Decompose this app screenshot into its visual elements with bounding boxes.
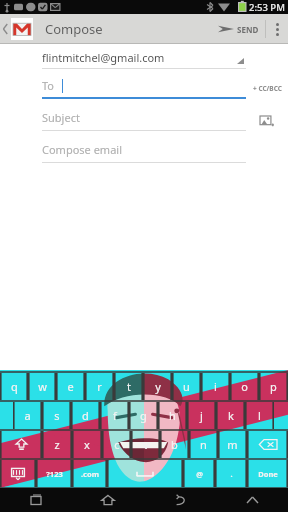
staticText: i (214, 379, 217, 394)
button[interactable]: + CC/BCC (246, 84, 288, 93)
staticText: ?123 (46, 469, 63, 479)
staticText: Compose (45, 20, 103, 38)
button[interactable]: b (160, 430, 189, 459)
staticText: flintmitchel@gmail.com (42, 50, 237, 65)
button[interactable]: l (245, 401, 274, 430)
button[interactable]: h (158, 401, 187, 430)
staticText: l (258, 408, 261, 423)
staticText: y (155, 379, 161, 394)
button[interactable]: Home (72, 488, 144, 512)
button[interactable]: ?123 (36, 459, 72, 488)
button[interactable]: t (114, 372, 143, 401)
button[interactable]: Space (107, 459, 183, 488)
button[interactable]: . (215, 459, 247, 488)
staticText: j (200, 408, 203, 423)
staticText: h (169, 408, 176, 423)
staticText: Compose email (42, 142, 122, 157)
button[interactable]: Switch keyboard (0, 459, 36, 488)
staticText: p (270, 379, 277, 394)
button[interactable]: Done (247, 459, 288, 488)
staticText: u (183, 379, 190, 394)
staticText: Done (258, 469, 278, 479)
button[interactable]: a (13, 401, 42, 430)
staticText: n (200, 437, 207, 452)
staticText: q (11, 379, 18, 394)
staticText: m (227, 437, 238, 452)
button[interactable]: SEND (212, 14, 265, 44)
staticText: s (54, 408, 60, 423)
button[interactable]: u (172, 372, 201, 401)
staticText: t (127, 379, 131, 394)
staticText: To (42, 78, 55, 93)
button[interactable]: Subject (42, 110, 246, 131)
button[interactable]: f (100, 401, 129, 430)
button[interactable]: z (42, 430, 72, 459)
staticText: w (38, 379, 47, 394)
button[interactable]: Recent apps (0, 488, 72, 512)
staticText: v (143, 437, 149, 452)
staticText: SEND (237, 24, 259, 35)
staticText: g (140, 408, 147, 423)
button[interactable]: Delete (247, 430, 288, 459)
button[interactable]: More options (266, 14, 288, 44)
staticText: 2:53 PM (249, 1, 285, 14)
button[interactable]: n (189, 430, 218, 459)
staticText: f (113, 408, 117, 423)
staticText: e (67, 379, 74, 394)
staticText: + CC/BCC (253, 84, 282, 93)
button[interactable]: x (72, 430, 102, 459)
staticText: b (171, 437, 178, 452)
staticText: @ (196, 469, 203, 479)
button[interactable]: m (218, 430, 247, 459)
button[interactable]: w (28, 372, 56, 401)
button[interactable]: p (259, 372, 288, 401)
staticText: c (114, 437, 120, 452)
button[interactable]: i (201, 372, 230, 401)
button[interactable]: y (143, 372, 172, 401)
button[interactable]: Navigate up (0, 14, 37, 44)
button[interactable]: flintmitchel@gmail.com (0, 50, 288, 69)
staticText: r (97, 379, 102, 394)
staticText: .com (81, 469, 99, 479)
button[interactable]: o (230, 372, 259, 401)
button[interactable]: .com (72, 459, 107, 488)
button[interactable]: Shift (0, 430, 42, 459)
staticText: k (228, 408, 234, 423)
button[interactable]: Hide keyboard (216, 488, 288, 512)
staticText: o (241, 379, 248, 394)
staticText: x (84, 437, 90, 452)
button[interactable]: Attach image (246, 114, 288, 128)
staticText: d (82, 408, 89, 423)
button[interactable]: q (0, 372, 28, 401)
button[interactable]: k (216, 401, 245, 430)
button[interactable]: d (71, 401, 100, 430)
staticText: a (24, 408, 31, 423)
button[interactable]: r (85, 372, 114, 401)
staticText: Subject (42, 110, 80, 125)
staticText: . (230, 469, 233, 479)
staticText: z (54, 437, 60, 452)
button[interactable]: g (129, 401, 158, 430)
button[interactable]: j (187, 401, 216, 430)
button[interactable]: c (102, 430, 131, 459)
button[interactable]: To (42, 78, 246, 99)
button[interactable]: e (56, 372, 85, 401)
button[interactable]: Compose email (42, 142, 246, 163)
button[interactable]: @ (183, 459, 215, 488)
button[interactable]: Back (144, 488, 216, 512)
button[interactable]: s (42, 401, 71, 430)
button[interactable]: v (131, 430, 160, 459)
